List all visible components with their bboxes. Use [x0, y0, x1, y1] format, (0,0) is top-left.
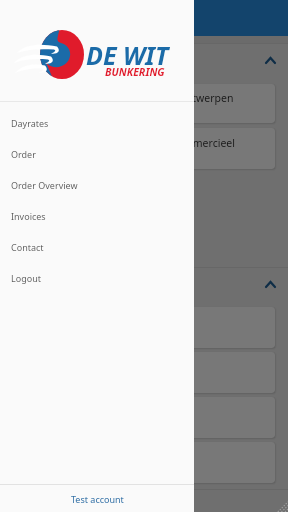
button[interactable] [12, 442, 275, 483]
staticText: Bunkerstation [12, 53, 265, 67]
button[interactable] [12, 352, 275, 393]
button[interactable]: Invoices [0, 200, 194, 231]
button[interactable]: Order [0, 138, 194, 169]
button[interactable]: Antwerpen [12, 84, 275, 123]
staticText: DE WIT [86, 38, 169, 72]
button[interactable]: Commercieel [12, 128, 275, 169]
button[interactable]: Order Overview [0, 169, 194, 200]
staticText: Invoices [11, 210, 46, 222]
button[interactable]: Logout [0, 262, 194, 293]
button[interactable] [12, 307, 275, 348]
staticText: Contact [11, 241, 44, 253]
staticText: Logout [11, 272, 41, 284]
staticText: Test account [71, 493, 124, 505]
button[interactable]: Dayrates [0, 107, 194, 138]
button[interactable]: Producten [0, 268, 288, 300]
button[interactable] [12, 397, 275, 438]
staticText: Commercieel [170, 136, 235, 150]
button[interactable]: Test account [0, 485, 194, 512]
other: Collapse [265, 281, 276, 288]
staticText: Order [11, 148, 36, 160]
staticText: Order Overview [11, 179, 78, 191]
staticText: Antwerpen [179, 91, 234, 105]
staticText: BUNKERING [105, 65, 165, 79]
button[interactable]: Contact [0, 231, 194, 262]
staticText: Producten [12, 277, 265, 291]
button[interactable]: Bunkerstation [0, 44, 288, 76]
staticText: Dayrates [11, 117, 49, 129]
other: Collapse [265, 57, 276, 64]
